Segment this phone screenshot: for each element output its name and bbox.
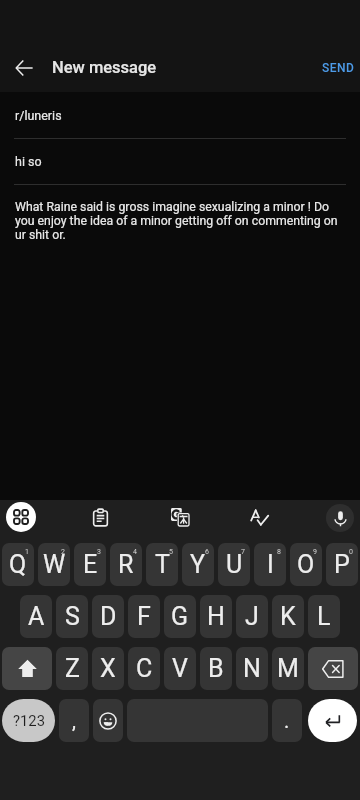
staticText: 5 <box>169 548 173 556</box>
staticText: V <box>172 654 188 683</box>
staticText: W <box>43 550 66 579</box>
staticText: r/luneris <box>15 108 62 123</box>
button[interactable]: T <box>146 543 178 586</box>
button[interactable]: SEND <box>310 55 360 81</box>
staticText: 6 <box>205 548 209 556</box>
button[interactable]: N <box>236 647 268 690</box>
button[interactable]: I <box>254 543 286 586</box>
staticText: P <box>334 550 350 579</box>
staticText: A <box>28 602 45 631</box>
staticText: Y <box>190 550 206 579</box>
staticText: K <box>280 602 296 631</box>
staticText: Q <box>9 550 27 579</box>
button[interactable]: K <box>272 595 304 638</box>
staticText: 7 <box>241 548 245 556</box>
button[interactable]: Back <box>0 44 48 92</box>
staticText: 4 <box>133 548 137 556</box>
button[interactable]: X <box>92 647 124 690</box>
button[interactable]: V <box>164 647 196 690</box>
staticText: B <box>208 654 224 683</box>
staticText: ?123 <box>13 712 45 729</box>
button[interactable]: Clipboard <box>85 502 115 532</box>
staticText: H <box>207 602 225 631</box>
staticText: 3 <box>97 548 101 556</box>
staticText: Z <box>65 654 80 683</box>
button[interactable]: U <box>218 543 250 586</box>
button[interactable]: D <box>92 595 124 638</box>
button[interactable]: L <box>308 595 340 638</box>
button[interactable]: F <box>128 595 160 638</box>
button[interactable]: G <box>164 595 196 638</box>
button[interactable]: A <box>20 595 52 638</box>
button[interactable]: M <box>272 647 304 690</box>
button[interactable]: Backspace <box>308 647 358 690</box>
button[interactable]: r/luneris <box>0 92 360 139</box>
staticText: D <box>100 602 117 631</box>
button[interactable]: Voice input <box>326 504 354 532</box>
button[interactable]: H <box>200 595 232 638</box>
button[interactable]: , <box>59 699 89 742</box>
staticText: T <box>155 550 170 579</box>
staticText: What Raine said is gross imagine sexuali… <box>15 200 347 242</box>
button[interactable]: Enter <box>308 699 357 742</box>
staticText: E <box>83 550 98 579</box>
button[interactable]: Spell check <box>244 502 274 532</box>
staticText: F <box>137 602 151 631</box>
button[interactable]: R <box>110 543 142 586</box>
staticText: 1 <box>25 548 29 556</box>
button[interactable]: S <box>56 595 88 638</box>
staticText: M <box>277 654 299 683</box>
staticText: , <box>72 709 76 732</box>
staticText: J <box>245 602 259 631</box>
staticText: R <box>118 550 134 579</box>
staticText: X <box>100 654 116 683</box>
button[interactable]: Y <box>182 543 214 586</box>
staticText: . <box>284 709 290 732</box>
staticText: 2 <box>61 548 65 556</box>
staticText: New message <box>52 58 157 77</box>
button[interactable]: Q <box>2 543 34 586</box>
staticText: L <box>317 602 331 631</box>
staticText: S <box>65 602 80 631</box>
button[interactable]: O <box>290 543 322 586</box>
button[interactable]: B <box>200 647 232 690</box>
staticText: U <box>226 550 243 579</box>
button[interactable]: Z <box>56 647 88 690</box>
staticText: 8 <box>277 548 281 556</box>
staticText: 0 <box>349 548 353 556</box>
button[interactable]: Shift <box>2 647 52 690</box>
button[interactable]: ?123 <box>2 699 55 742</box>
staticText: I <box>267 550 274 579</box>
button[interactable]: P <box>326 543 358 586</box>
button[interactable]: J <box>236 595 268 638</box>
button[interactable]: hi so <box>0 139 360 185</box>
button[interactable]: . <box>272 699 302 742</box>
button[interactable]: W <box>38 543 70 586</box>
button[interactable]: Emoji <box>93 699 123 742</box>
button[interactable]: Translate <box>165 502 195 532</box>
staticText: O <box>297 550 315 579</box>
button[interactable]: Open toolbar <box>6 502 36 532</box>
staticText: hi so <box>15 154 42 169</box>
staticText: G <box>171 602 189 631</box>
button[interactable]: E <box>74 543 106 586</box>
staticText: N <box>243 654 261 683</box>
staticText: SEND <box>322 61 355 75</box>
staticText: C <box>136 654 153 683</box>
staticText: 9 <box>313 548 317 556</box>
button[interactable]: What Raine said is gross imagine sexuali… <box>15 200 347 242</box>
button[interactable]: C <box>128 647 160 690</box>
